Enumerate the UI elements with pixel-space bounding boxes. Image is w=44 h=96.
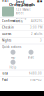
staticText: Check in xyxy=(2,26,14,29)
staticText: 123 Market Street xyxy=(15,8,30,15)
staticText: Grand Plaza Hotel xyxy=(15,0,32,7)
staticText: ▮▮ ◼ xyxy=(37,0,42,2)
staticText: Share xyxy=(27,56,34,59)
staticText: Guests xyxy=(2,32,11,36)
staticText: $480.00 xyxy=(29,72,42,75)
staticText: 3 xyxy=(40,39,42,42)
staticText: Quick actions xyxy=(2,45,21,49)
staticText: Total xyxy=(2,72,8,75)
staticText: 9:41 xyxy=(2,0,9,3)
staticText: Help xyxy=(9,66,16,69)
button[interactable]: Help xyxy=(8,60,18,69)
staticText: Arriving today xyxy=(15,16,26,23)
staticText: Map xyxy=(10,56,15,59)
staticText: Visa ••42 xyxy=(30,78,42,82)
staticText: 3:00 PM xyxy=(30,26,42,29)
button[interactable]: Map xyxy=(8,50,18,59)
button[interactable]: Share xyxy=(26,50,36,59)
staticText: A4K29L xyxy=(31,19,42,23)
staticText: Order Details xyxy=(9,2,35,7)
staticText: Nights xyxy=(2,39,11,42)
staticText: Confirmation xyxy=(2,19,20,23)
staticText: Paid xyxy=(2,78,8,82)
staticText: 2 adults xyxy=(31,32,42,36)
